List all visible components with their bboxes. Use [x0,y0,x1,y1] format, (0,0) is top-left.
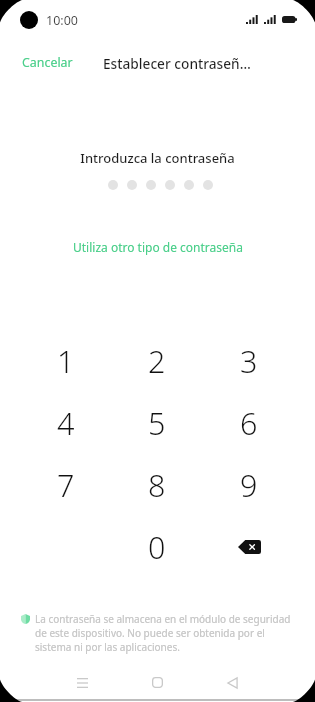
staticText: 4 [57,402,75,444]
staticText: Cancelar [22,54,73,71]
staticText: 0 [148,526,166,568]
button[interactable]: Recientes [57,665,108,700]
staticText: 9 [240,464,258,506]
button[interactable]: 9 [203,454,295,516]
button[interactable]: 5 [111,392,203,454]
button[interactable]: Cancelar [14,50,81,75]
button[interactable]: 2 [111,330,203,392]
staticText: Establecer contraseñ… [103,54,251,73]
staticText: 5 [148,402,166,444]
staticText: La contraseña se almacena en el módulo d… [35,612,293,654]
button[interactable]: Borrar [203,516,295,578]
button[interactable]: 0 [111,516,203,578]
button[interactable]: 1 [20,330,111,392]
button[interactable]: Utiliza otro tipo de contraseña [63,234,253,260]
staticText: 7 [57,464,75,506]
staticText: Introduzca la contraseña [0,149,315,167]
button[interactable]: 8 [111,454,203,516]
staticText: 8 [148,464,166,506]
button[interactable]: 7 [20,454,111,516]
staticText: Utiliza otro tipo de contraseña [73,239,243,255]
staticText: 6 [240,402,258,444]
button[interactable]: Inicio [132,665,183,700]
button[interactable]: 4 [20,392,111,454]
staticText: 1 [57,340,75,382]
button[interactable]: 3 [203,330,295,392]
button[interactable]: Atrás [207,665,258,700]
button[interactable]: 6 [203,392,295,454]
staticText: 2 [148,340,166,382]
staticText: 3 [240,340,258,382]
staticText: 10:00 [46,12,78,29]
